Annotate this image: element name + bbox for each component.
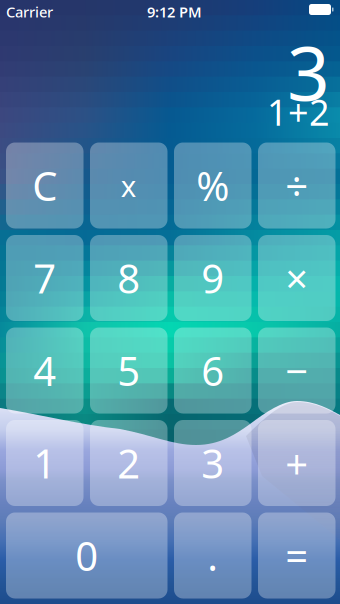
button[interactable]: + xyxy=(258,420,335,506)
button[interactable]: 7 xyxy=(6,235,83,321)
button[interactable]: x xyxy=(90,142,167,228)
staticText: 3 xyxy=(287,22,330,121)
staticText: 6 xyxy=(201,344,224,397)
button[interactable]: 9 xyxy=(174,235,251,321)
staticText: 3 xyxy=(201,436,224,489)
staticText: 7 xyxy=(33,251,56,304)
button[interactable]: 3 xyxy=(174,420,251,506)
staticText: 2 xyxy=(117,436,140,489)
button[interactable]: ÷ xyxy=(258,142,335,228)
staticText: 8 xyxy=(117,251,140,304)
staticText: ÷ xyxy=(285,159,308,212)
button[interactable]: = xyxy=(258,512,335,598)
staticText: 0 xyxy=(75,529,98,582)
button[interactable]: 1 xyxy=(6,420,83,506)
button[interactable]: 0 xyxy=(6,512,167,598)
button[interactable]: 2 xyxy=(90,420,167,506)
button[interactable]: 5 xyxy=(90,327,167,413)
staticText: Carrier xyxy=(6,2,53,21)
staticText: C xyxy=(32,159,57,212)
staticText: + xyxy=(285,436,308,489)
staticText: 9:12 PM xyxy=(147,2,202,21)
staticText: 4 xyxy=(33,344,56,397)
staticText: 9 xyxy=(201,251,224,304)
staticText: % xyxy=(196,159,229,212)
staticText: . xyxy=(207,529,218,582)
button[interactable]: C xyxy=(6,142,83,228)
staticText: 5 xyxy=(117,344,140,397)
staticText: − xyxy=(285,344,308,397)
button[interactable]: 6 xyxy=(174,327,251,413)
staticText: = xyxy=(285,529,308,582)
button[interactable]: % xyxy=(174,142,251,228)
button[interactable]: . xyxy=(174,512,251,598)
button[interactable]: 4 xyxy=(6,327,83,413)
button[interactable]: − xyxy=(258,327,335,413)
staticText: 1 xyxy=(33,436,56,489)
staticText: x xyxy=(121,166,137,205)
staticText: 1+2 xyxy=(267,88,330,136)
button[interactable]: × xyxy=(258,235,335,321)
staticText: × xyxy=(285,251,308,304)
button[interactable]: 8 xyxy=(90,235,167,321)
